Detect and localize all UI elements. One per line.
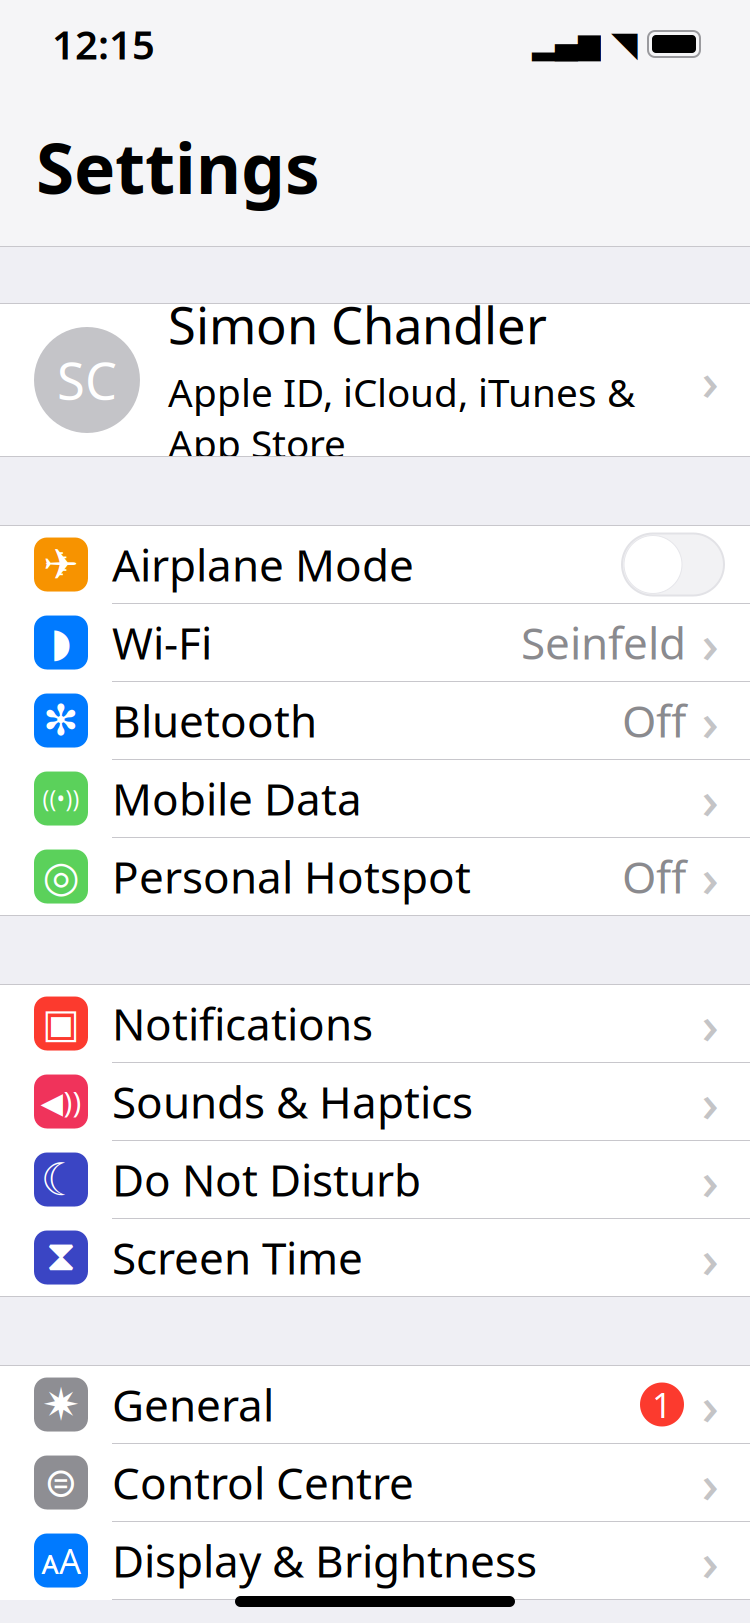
staticText: › [701,763,718,834]
staticText: Personal Hotspot [112,847,471,906]
staticText: General [112,1375,274,1434]
button[interactable]: ✻ [0,682,750,759]
button[interactable]: ◀)) [0,1063,750,1140]
staticText: › [701,1447,718,1518]
staticText: › [701,345,718,415]
staticText: › [701,1369,718,1440]
staticText: Off [622,691,686,750]
button[interactable]: ☾ [0,1141,750,1218]
staticText: SC [57,346,117,414]
staticText: ◎ [42,852,79,901]
staticText: 12:15 [52,17,155,70]
staticText: ᴀA [41,1537,81,1583]
staticText: ◥ [611,24,638,64]
staticText: 1 [652,1381,672,1427]
staticText: Simon Chandler [168,291,547,358]
staticText: Settings [36,121,320,213]
staticText: Seinfeld [521,613,686,672]
staticText: Sounds & Haptics [112,1072,473,1131]
staticText: ✻ [43,696,79,745]
staticText: ▣ [42,1001,80,1046]
button[interactable]: SC [0,304,750,456]
staticText: Bluetooth [112,691,317,750]
staticText: ▂▄▆ [532,27,601,61]
button[interactable]: ◗ [0,604,750,681]
button[interactable]: ✷ [0,1366,750,1443]
staticText: Apple ID, iCloud, iTunes & App Store [168,366,635,469]
staticText: Screen Time [112,1228,363,1287]
button[interactable]: ⧗ [0,1219,750,1296]
staticText: › [701,1144,718,1215]
staticText: Do Not Disturb [112,1150,421,1209]
staticText: ⊜ [44,1460,78,1505]
button[interactable]: ⊜ [0,1444,750,1521]
staticText: › [701,841,718,912]
staticText: ✈ [43,540,79,589]
staticText: ((•)) [42,783,79,813]
button[interactable]: ᴀA [0,1522,750,1599]
staticText: Control Centre [112,1453,414,1512]
staticText: Display & Brightness [112,1531,537,1590]
staticText: ⧗ [46,1237,76,1278]
button[interactable]: ✈ [0,526,750,603]
staticText: › [701,1525,718,1596]
staticText: › [701,607,718,678]
staticText: › [701,1066,718,1137]
staticText: Wi-Fi [112,613,212,672]
button[interactable]: ▣ [0,985,750,1062]
staticText: › [701,1222,718,1293]
staticText: Airplane Mode [112,535,414,594]
staticText: Notifications [112,994,373,1053]
staticText: ✷ [42,1379,80,1430]
staticText: › [701,988,718,1059]
staticText: Mobile Data [112,769,362,828]
staticText: ☾ [40,1154,81,1205]
staticText: ◀)) [40,1082,81,1121]
button[interactable]: ((•)) [0,760,750,837]
staticText: ◗ [50,620,71,665]
staticText: Off [622,847,686,906]
staticText: › [701,685,718,756]
button[interactable]: ◎ [0,838,750,915]
